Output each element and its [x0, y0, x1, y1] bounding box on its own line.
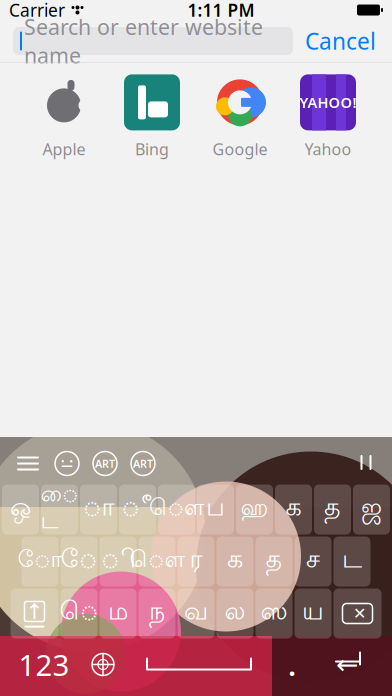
- staticText: ✕: [353, 604, 366, 623]
- staticText: ↑: [25, 599, 43, 624]
- button[interactable]: ம: [99, 588, 136, 638]
- staticText: ோ: [17, 548, 62, 575]
- button[interactable]: YAHOO!: [284, 73, 372, 160]
- staticText: ART: [95, 456, 115, 471]
- staticText: Cancel: [305, 26, 376, 56]
- button[interactable]: Google: [196, 73, 284, 160]
- button[interactable]: Apple: [20, 73, 108, 160]
- staticText: ர: [189, 546, 202, 577]
- button[interactable]: ந: [138, 588, 175, 638]
- staticText: ௌ: [149, 496, 204, 523]
- button[interactable]: Bing: [108, 73, 196, 160]
- staticText: ச: [306, 546, 320, 577]
- staticText: ௌ: [129, 548, 184, 575]
- staticText: க: [227, 546, 243, 577]
- staticText: ய: [302, 598, 324, 629]
- button[interactable]: வ: [177, 588, 214, 638]
- button[interactable]: ௌ: [138, 536, 175, 586]
- button[interactable]: ய: [294, 588, 331, 638]
- button[interactable]: Return: [315, 640, 381, 688]
- staticText: ←: [336, 649, 358, 680]
- staticText: ா: [82, 494, 114, 525]
- staticText: வ: [184, 598, 208, 629]
- staticText: .: [288, 645, 296, 684]
- button[interactable]: ச: [294, 536, 331, 586]
- staticText: Bing: [135, 138, 169, 160]
- button[interactable]: Art: [86, 444, 124, 482]
- staticText: ம: [108, 598, 128, 629]
- button[interactable]: Search or enter website name: [13, 27, 293, 55]
- button[interactable]: .: [269, 640, 315, 688]
- button[interactable]: ா: [80, 484, 117, 534]
- staticText: ீ: [121, 494, 154, 525]
- button[interactable]: ல: [216, 588, 253, 638]
- button[interactable]: ோ: [21, 536, 58, 586]
- button[interactable]: ைட: [41, 484, 78, 534]
- button[interactable]: ீ: [119, 484, 156, 534]
- button[interactable]: ✕: [333, 588, 381, 638]
- staticText: 1:11 PM: [187, 0, 254, 21]
- button[interactable]: த: [314, 484, 351, 534]
- button[interactable]: Hide keyboard: [344, 444, 388, 482]
- staticText: ART: [133, 456, 153, 471]
- staticText: க: [285, 494, 301, 525]
- staticText: Google: [212, 138, 267, 160]
- button[interactable]: க: [275, 484, 312, 534]
- button[interactable]: ி: [99, 536, 136, 586]
- button[interactable]: Emoji: [48, 444, 86, 482]
- button[interactable]: Next keyboard: [77, 640, 129, 688]
- staticText: ே: [60, 546, 97, 577]
- staticText: ஜ: [361, 494, 382, 525]
- button[interactable]: ஒ: [2, 484, 39, 534]
- staticText: Yahoo: [304, 138, 351, 160]
- staticText: த: [265, 546, 282, 577]
- button[interactable]: Art styles: [124, 444, 162, 482]
- staticText: YAHOO!: [299, 93, 356, 112]
- button[interactable]: Keyboard menu: [8, 444, 48, 482]
- staticText: Apple: [42, 138, 85, 160]
- button[interactable]: ப: [197, 484, 234, 534]
- staticText: Search or enter website name: [24, 13, 263, 69]
- button[interactable]: ஹ: [236, 484, 273, 534]
- staticText: ந: [149, 598, 165, 629]
- staticText: ஹ: [240, 496, 268, 523]
- button[interactable]: Cancel: [293, 24, 388, 58]
- staticText: 123: [18, 645, 69, 684]
- button[interactable]: த: [255, 536, 292, 586]
- staticText: ைட: [40, 483, 78, 536]
- staticText: ல: [224, 598, 245, 629]
- button[interactable]: ே: [60, 536, 97, 586]
- button[interactable]: க: [216, 536, 253, 586]
- button[interactable]: ட: [333, 536, 370, 586]
- staticText: ி: [100, 546, 135, 577]
- button[interactable]: ஸ: [255, 588, 292, 638]
- button[interactable]: ெ: [60, 588, 97, 638]
- staticText: ப: [206, 494, 225, 525]
- staticText: ஸ: [260, 598, 287, 629]
- button[interactable]: ↑: [10, 588, 58, 638]
- button[interactable]: 123: [11, 640, 77, 688]
- button[interactable]: ௌ: [158, 484, 195, 534]
- button[interactable]: Space: [129, 640, 269, 688]
- staticText: ஒ: [10, 494, 31, 525]
- staticText: ட: [342, 546, 362, 577]
- button[interactable]: ர: [177, 536, 214, 586]
- staticText: த: [324, 494, 341, 525]
- button[interactable]: ஜ: [353, 484, 390, 534]
- staticText: Carrier: [9, 0, 65, 21]
- staticText: ெ: [59, 598, 98, 629]
